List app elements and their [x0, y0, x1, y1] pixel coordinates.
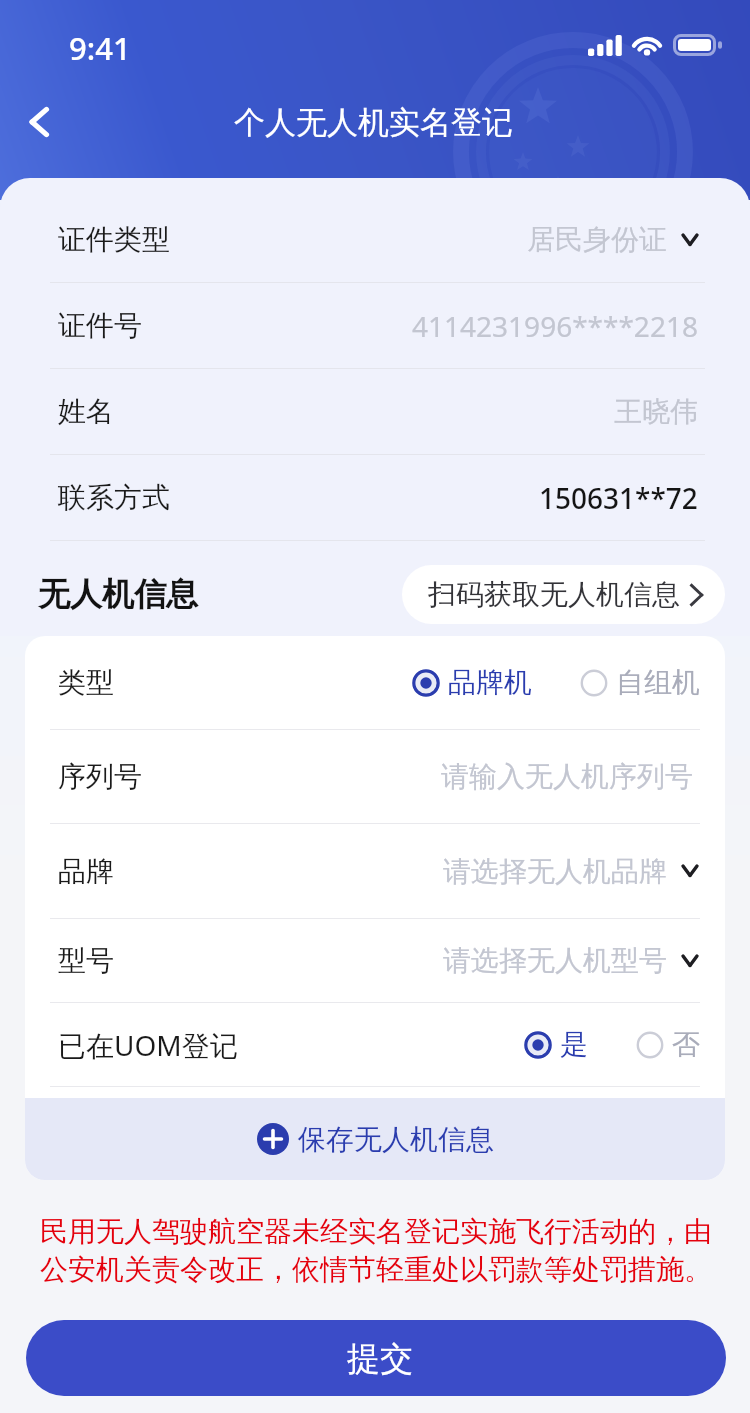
- staticText: 居民身份证: [527, 222, 667, 257]
- staticText: 品牌: [58, 854, 114, 889]
- button[interactable]: 序列号: [25, 730, 725, 823]
- staticText: 类型: [58, 665, 114, 700]
- staticText: 请选择无人机型号: [443, 943, 667, 978]
- button[interactable]: 型号: [25, 919, 725, 1002]
- button[interactable]: 证件号: [0, 283, 750, 368]
- button[interactable]: Back: [12, 96, 64, 148]
- staticText: 联系方式: [58, 480, 170, 515]
- button[interactable]: 品牌: [25, 824, 725, 918]
- staticText: 证件号: [58, 308, 142, 343]
- staticText: 请输入无人机序列号: [441, 759, 693, 794]
- staticText: 保存无人机信息: [298, 1122, 494, 1157]
- staticText: 4114231996****2218: [412, 307, 698, 345]
- staticText: 型号: [58, 943, 114, 978]
- button[interactable]: 保存无人机信息: [25, 1098, 725, 1180]
- staticText: 否: [672, 1027, 700, 1062]
- staticText: 请选择无人机品牌: [443, 854, 667, 889]
- staticText: 姓名: [58, 394, 114, 429]
- staticText: 已在UOM登记: [58, 1026, 238, 1064]
- staticText: 提交: [347, 1338, 413, 1380]
- staticText: 民用无人驾驶航空器未经实名登记实施飞行活动的，由公安机关责令改正，依情节轻重处以…: [40, 1214, 714, 1288]
- staticText: 王晓伟: [614, 394, 698, 429]
- staticText: 品牌机: [448, 665, 532, 700]
- button[interactable]: 联系方式: [0, 455, 750, 540]
- button[interactable]: 否: [636, 1027, 700, 1062]
- button[interactable]: 自组机: [580, 665, 700, 700]
- button[interactable]: 是: [524, 1027, 588, 1062]
- button[interactable]: 类型: [25, 636, 725, 729]
- staticText: 9:41: [69, 27, 131, 69]
- button[interactable]: 品牌机: [412, 665, 532, 700]
- staticText: 扫码获取无人机信息: [428, 577, 680, 612]
- staticText: 是: [560, 1027, 588, 1062]
- staticText: 无人机信息: [38, 574, 198, 614]
- button[interactable]: 证件类型: [0, 197, 750, 282]
- button[interactable]: 已在UOM登记: [25, 1003, 725, 1086]
- button[interactable]: 提交: [26, 1320, 726, 1396]
- button[interactable]: 扫码获取无人机信息: [402, 565, 725, 624]
- staticText: 个人无人机实名登记: [234, 103, 513, 142]
- button[interactable]: 姓名: [0, 369, 750, 454]
- staticText: 序列号: [58, 759, 142, 794]
- staticText: 150631**72: [539, 479, 698, 517]
- staticText: 自组机: [616, 665, 700, 700]
- staticText: 证件类型: [58, 222, 170, 257]
